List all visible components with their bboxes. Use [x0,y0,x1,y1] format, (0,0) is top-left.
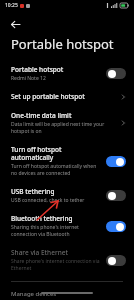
staticText: Bluetooth tethering [11,214,73,223]
staticText: USB connected, check to tether [11,197,85,204]
button[interactable]: On [106,221,126,232]
staticText: Portable hotspot [11,65,64,74]
staticText: 10:25 [5,2,18,9]
button[interactable]: Back [6,15,24,33]
staticText: Data limit will be applied next time you… [11,121,115,135]
staticText: Manage devices [11,290,57,298]
button[interactable]: Set up portable hotspot [0,87,134,106]
button[interactable]: Off [106,190,126,201]
staticText: Share phone's internet connection via Et… [11,258,100,272]
button[interactable]: Portable hotspot [0,60,134,87]
staticText: Share via Ethernet [11,248,68,257]
staticText: One-time data limit [11,111,72,120]
button[interactable]: Share via Ethernet [0,243,134,277]
button[interactable]: Off [106,68,126,79]
staticText: Sharing this phone's internet connection… [11,224,100,238]
button[interactable]: Turn off hotspot automatically [0,140,134,182]
button[interactable]: USB tethering [0,182,134,209]
staticText: Redmi Note 12 [11,75,46,82]
button[interactable]: On [106,156,126,167]
staticText: Set up portable hotspot [11,92,85,101]
button[interactable]: One-time data limit [0,106,134,140]
staticText: Turn off hotspot automatically when no d… [11,163,100,177]
button[interactable]: Bluetooth tethering [0,209,134,243]
staticText: Portable hotspot [11,35,114,53]
button[interactable]: Off [106,255,126,266]
staticText: Turn off hotspot automatically [11,145,100,162]
staticText: USB tethering [11,187,55,196]
